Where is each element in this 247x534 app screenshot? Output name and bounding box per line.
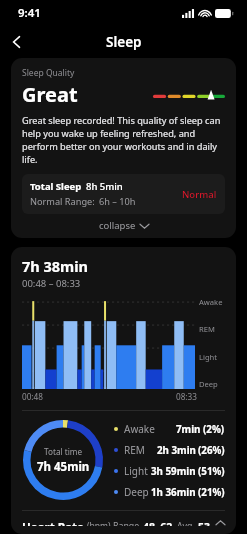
staticText: (21%) — [198, 486, 225, 499]
staticText: (bpm) — [87, 520, 111, 526]
staticText: Sleep Quality — [22, 67, 75, 79]
staticText: 2h 3min — [157, 444, 196, 457]
staticText: 7h 45min — [37, 459, 90, 475]
staticText: Deep — [124, 485, 149, 499]
button[interactable]: Back — [0, 26, 34, 58]
staticText: Great sleep recorded! This quality of sl… — [22, 114, 225, 166]
staticText: Light — [199, 352, 218, 362]
staticText: Normal — [182, 188, 217, 201]
staticText: Awake — [124, 422, 155, 436]
staticText: (2%) — [203, 423, 225, 436]
staticText: Total Sleep — [30, 180, 82, 193]
staticText: Light — [124, 464, 148, 478]
button[interactable]: Heart Rate — [22, 520, 225, 526]
staticText: REM — [124, 443, 145, 457]
staticText: Range — [113, 520, 140, 526]
staticText: Great — [22, 81, 78, 108]
staticText: 9:41 — [18, 5, 41, 21]
staticText: 1h 36min — [151, 486, 196, 499]
staticText: 8h 5min — [86, 180, 123, 193]
staticText: collapse — [99, 219, 136, 232]
staticText: 3h 59min — [151, 465, 196, 478]
staticText: 7min — [176, 423, 201, 436]
staticText: 6h – 10h — [99, 195, 136, 208]
button[interactable]: collapse — [22, 219, 225, 232]
staticText: 00:48 — [22, 391, 43, 402]
staticText: (51%) — [198, 465, 225, 478]
staticText: REM — [199, 324, 215, 334]
staticText: 08:33 — [176, 391, 197, 402]
staticText: Awake — [199, 297, 223, 307]
staticText: 48–62 — [143, 520, 173, 526]
staticText: (26%) — [198, 444, 225, 457]
staticText: Avg. — [177, 520, 195, 526]
staticText: Total time — [44, 446, 83, 457]
staticText: 53 — [198, 520, 211, 526]
staticText: 00:48 – 08:33 — [22, 277, 81, 290]
staticText: Normal Range: — [30, 195, 95, 208]
staticText: Heart Rate — [22, 520, 84, 526]
staticText: Sleep — [106, 33, 142, 51]
staticText: 7h 38min — [22, 256, 88, 276]
staticText: Deep — [199, 379, 218, 389]
